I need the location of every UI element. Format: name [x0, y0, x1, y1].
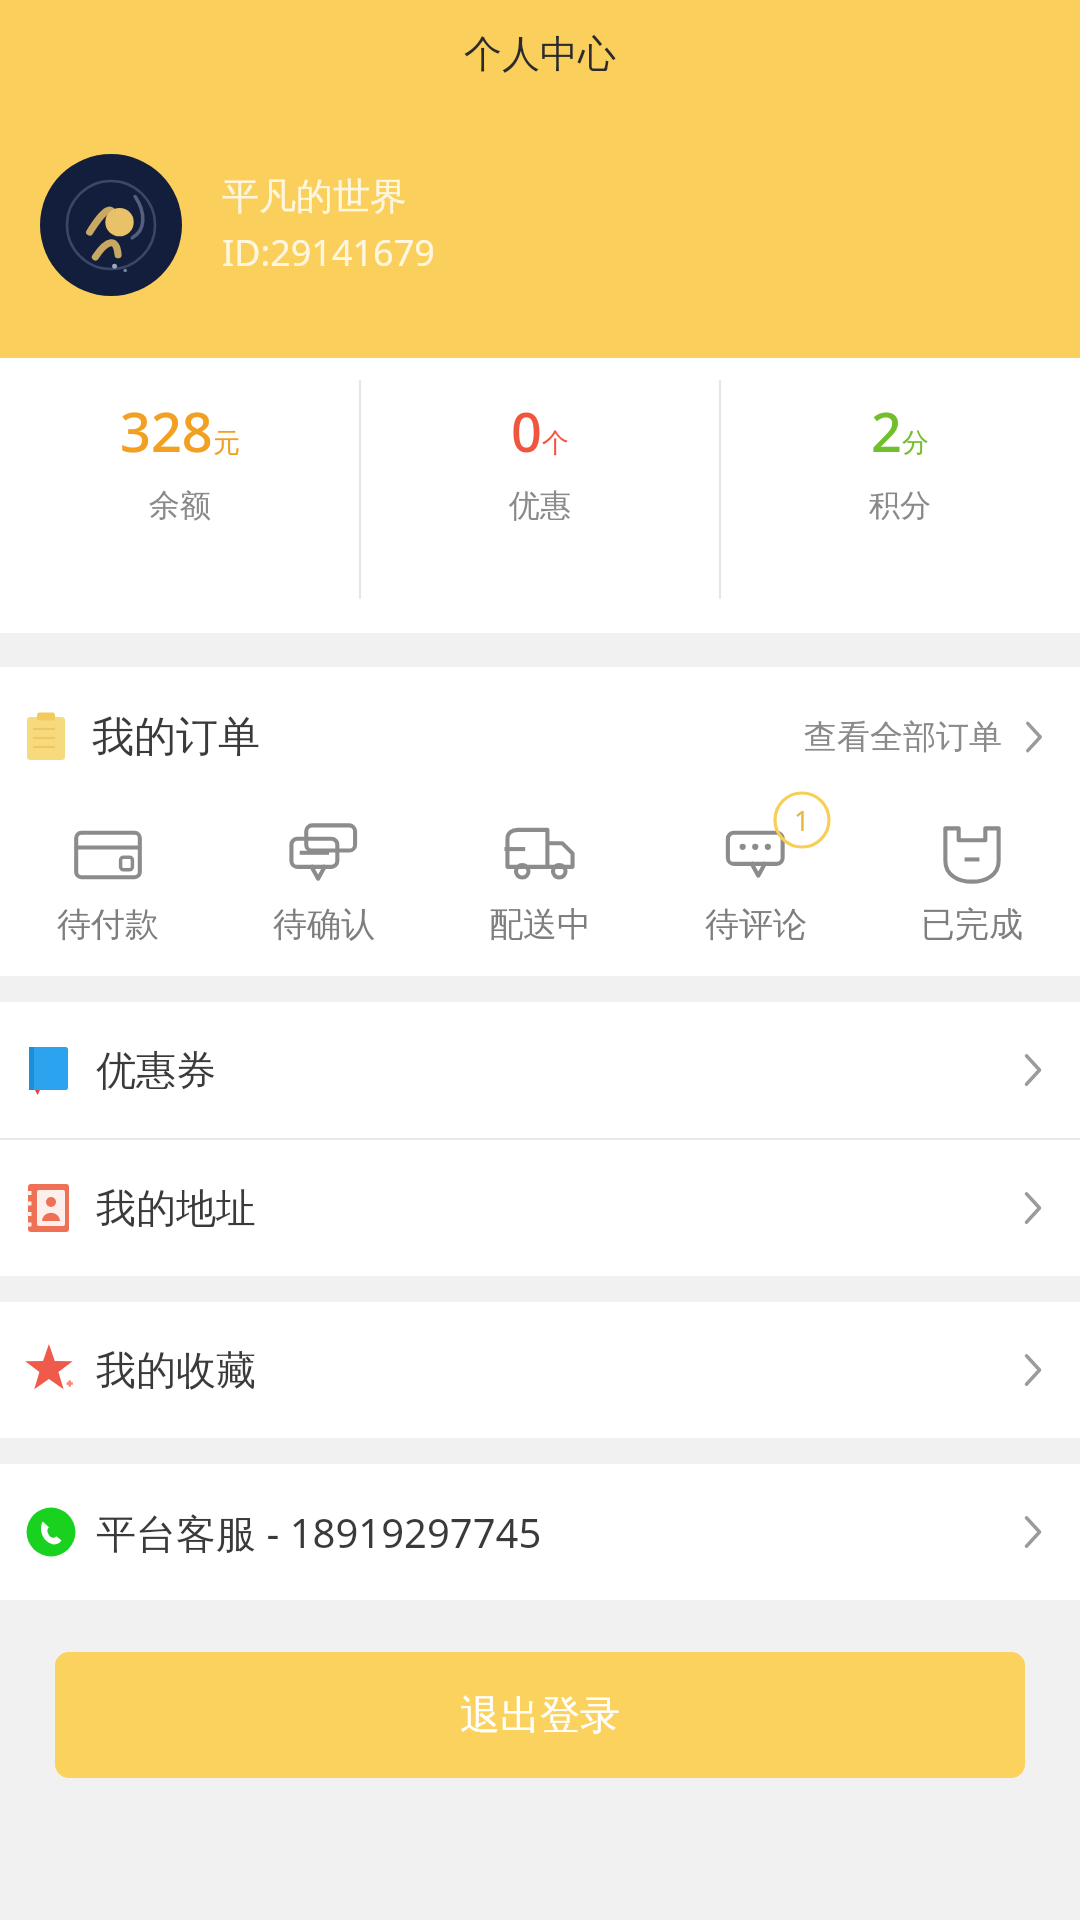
- button[interactable]: 2: [720, 394, 1080, 525]
- staticText: 余额: [149, 486, 211, 525]
- button[interactable]: 我的收藏: [0, 1302, 1080, 1438]
- staticText: 328: [120, 394, 213, 468]
- button[interactable]: 待付款: [0, 807, 216, 946]
- staticText: 分: [902, 426, 929, 460]
- button[interactable]: 优惠券: [0, 1002, 1080, 1138]
- staticText: 已完成: [921, 903, 1023, 946]
- staticText: 查看全部订单: [804, 716, 1002, 758]
- button[interactable]: 退出登录: [55, 1652, 1025, 1778]
- staticText: 配送中: [489, 903, 591, 946]
- staticText: 待评论: [705, 903, 807, 946]
- staticText: 待付款: [57, 903, 159, 946]
- staticText: 个: [542, 426, 569, 460]
- staticText: 1: [794, 802, 810, 839]
- button[interactable]: 待确认: [216, 807, 432, 946]
- button[interactable]: 1: [648, 807, 864, 946]
- staticText: 我的收藏: [96, 1345, 256, 1395]
- staticText: 平凡的世界: [222, 173, 407, 220]
- staticText: 个人中心: [464, 30, 616, 78]
- staticText: 待确认: [273, 903, 375, 946]
- staticText: 优惠: [509, 486, 571, 525]
- staticText: 优惠券: [96, 1045, 216, 1095]
- button[interactable]: 平台客服 - 18919297745: [0, 1464, 1080, 1600]
- staticText: 2: [871, 394, 902, 468]
- button[interactable]: 我的订单: [0, 667, 1080, 807]
- staticText: 平台客服 - 18919297745: [96, 1505, 542, 1560]
- staticText: 退出登录: [460, 1690, 620, 1740]
- button[interactable]: 0: [360, 394, 720, 525]
- button[interactable]: 已完成: [864, 807, 1080, 946]
- staticText: ID:29141679: [222, 228, 435, 277]
- staticText: 元: [213, 426, 240, 460]
- button[interactable]: 328: [0, 394, 360, 525]
- staticText: 积分: [869, 486, 931, 525]
- staticText: 我的地址: [96, 1183, 256, 1233]
- staticText: 我的订单: [92, 711, 260, 764]
- button[interactable]: 我的地址: [0, 1140, 1080, 1276]
- staticText: 0: [511, 394, 542, 468]
- button[interactable]: 配送中: [432, 807, 648, 946]
